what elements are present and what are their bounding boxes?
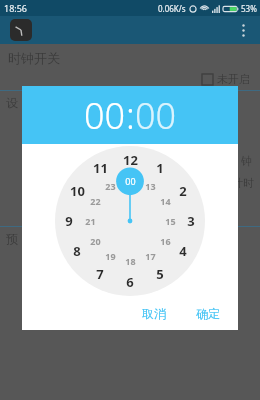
staticText: 1: [156, 159, 164, 177]
staticText: 设: [6, 95, 18, 110]
staticText: 12: [123, 151, 138, 169]
staticText: 19: [105, 250, 116, 262]
button[interactable]: 确定: [188, 302, 228, 325]
button[interactable]: 00: [135, 91, 177, 140]
staticText: 00: [84, 91, 126, 140]
staticText: 6: [126, 273, 134, 291]
button[interactable]: Clock: [10, 19, 32, 41]
staticText: 取消: [142, 306, 166, 321]
button[interactable]: 00: [84, 91, 126, 140]
staticText: 21: [85, 215, 96, 227]
staticText: 00: [135, 91, 177, 140]
staticText: 17: [145, 250, 156, 262]
staticText: 时钟开关: [8, 50, 60, 66]
staticText: 16: [160, 235, 171, 247]
staticText: 22: [90, 195, 101, 207]
staticText: 8: [73, 242, 81, 260]
staticText: 计时: [232, 176, 254, 190]
staticText: 11: [93, 159, 108, 177]
button[interactable]: More options: [234, 21, 252, 39]
staticText: 14: [160, 195, 171, 207]
staticText: 53%: [241, 3, 257, 14]
staticText: 5: [156, 265, 164, 283]
staticText: 20: [90, 235, 101, 247]
staticText: 15: [165, 215, 176, 227]
staticText: 3: [187, 212, 195, 230]
staticText: 2: [179, 182, 187, 200]
staticText: 钟: [241, 154, 252, 168]
staticText: 00: [125, 175, 136, 187]
button[interactable]: 取消: [134, 302, 174, 325]
staticText: 23: [105, 180, 116, 192]
staticText: 预: [6, 231, 18, 246]
staticText: 0.06K/s: [158, 3, 186, 14]
staticText: 18:56: [4, 2, 28, 14]
staticText: 9: [65, 212, 73, 230]
staticText: 确定: [196, 306, 220, 321]
staticText: 10: [70, 182, 85, 200]
staticText: 未开启: [217, 72, 250, 86]
staticText: :: [126, 91, 135, 140]
staticText: 18: [125, 255, 136, 267]
staticText: 7: [96, 265, 104, 283]
staticText: 13: [145, 180, 156, 192]
staticText: 4: [179, 242, 187, 260]
